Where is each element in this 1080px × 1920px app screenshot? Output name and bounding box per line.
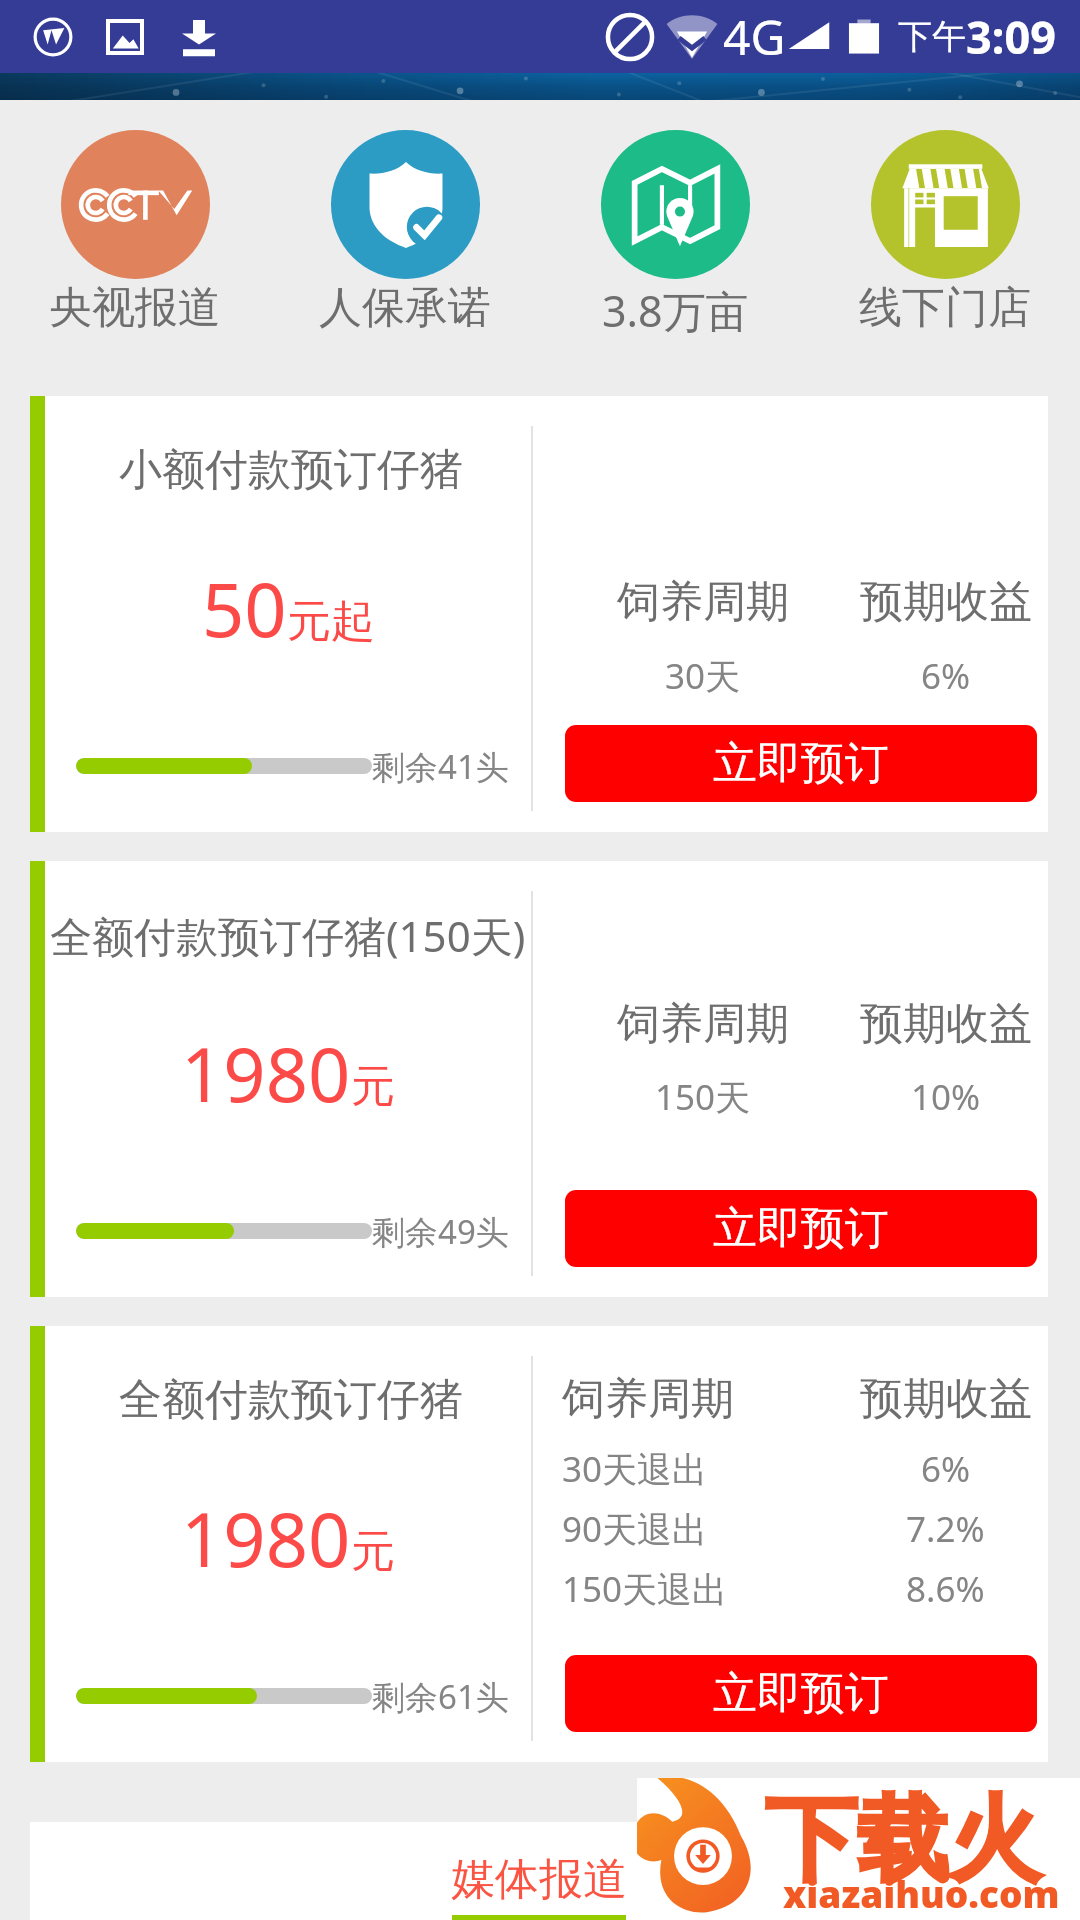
staticText: 饲养周期 (617, 575, 789, 629)
staticText: 10% (911, 1073, 981, 1117)
staticText: 全额付款预订仔猪 (119, 1373, 463, 1427)
button[interactable]: 全额付款预订仔猪 (30, 1326, 1048, 1762)
staticText: 30天 (665, 652, 741, 696)
staticText: 1980 (181, 1023, 351, 1103)
staticText: 下载火 (765, 1782, 1041, 1898)
button[interactable]: 央视报道 (0, 130, 270, 335)
button[interactable]: 小额付款预订仔猪 (30, 396, 1048, 832)
staticText: 元 (351, 1059, 395, 1114)
staticText: xiazaihuo.com (783, 1868, 1060, 1918)
staticText: 元 (351, 1524, 395, 1579)
staticText: 7.2% (906, 1505, 985, 1549)
staticText: 饲养周期 (562, 1372, 734, 1426)
staticText: 剩余41头 (372, 744, 509, 788)
staticText: 1980 (181, 1488, 351, 1568)
staticText: 立即预订 (713, 736, 889, 791)
staticText: 剩余61头 (372, 1674, 509, 1718)
staticText: 饲养周期 (617, 997, 789, 1051)
staticText: 小额付款预订仔猪 (119, 443, 463, 497)
staticText: 央视报道 (49, 281, 221, 335)
staticText: 元起 (287, 594, 375, 649)
staticText: 3.8万亩 (602, 281, 749, 340)
button[interactable]: 3.8万亩 (540, 130, 810, 340)
button[interactable]: 线下门店 (810, 130, 1080, 335)
staticText: 150天 (655, 1073, 751, 1117)
button[interactable]: 媒体报道 (439, 1850, 639, 1920)
staticText: 30天退出 (562, 1445, 708, 1489)
staticText: 6% (921, 652, 971, 696)
staticText: 立即预订 (713, 1201, 889, 1256)
staticText: 4G (723, 4, 786, 69)
staticText: 立即预订 (713, 1666, 889, 1721)
staticText: 8.6% (906, 1565, 985, 1609)
button[interactable]: 立即预订 (565, 725, 1037, 802)
button[interactable]: 人保承诺 (270, 130, 540, 335)
staticText: 剩余49头 (372, 1209, 509, 1253)
button[interactable]: 立即预订 (565, 1190, 1037, 1267)
staticText: 人保承诺 (319, 281, 491, 335)
staticText: 预期收益 (860, 1372, 1032, 1426)
staticText: 线下门店 (859, 281, 1031, 335)
staticText: 预期收益 (860, 997, 1032, 1051)
staticText: 150天退出 (562, 1565, 728, 1609)
other: App notification (34, 18, 72, 56)
button[interactable]: 全额付款预订仔猪(150天) (30, 861, 1048, 1297)
staticText: 3:09 (966, 6, 1056, 67)
button[interactable]: 立即预订 (565, 1655, 1037, 1732)
staticText: 50 (202, 558, 287, 638)
staticText: 90天退出 (562, 1505, 708, 1549)
staticText: 预期收益 (860, 575, 1032, 629)
other: Screenshot (106, 18, 144, 56)
staticText: 全额付款预订仔猪(150天) (50, 907, 526, 963)
staticText: 媒体报道 (451, 1852, 627, 1907)
other: Download (182, 20, 216, 54)
staticText: 6% (921, 1445, 971, 1489)
staticText: 下午 (898, 15, 966, 58)
